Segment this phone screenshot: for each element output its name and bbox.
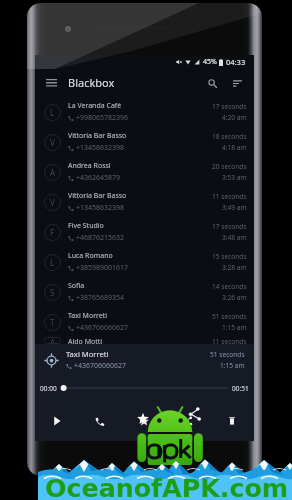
staticText: 11 seconds (212, 192, 247, 201)
button[interactable]: T (35, 307, 254, 337)
staticText: 3:53 am (222, 173, 247, 182)
button[interactable]: A (35, 337, 254, 344)
button[interactable]: Favorite (122, 400, 166, 441)
button[interactable]: Open navigation menu (43, 74, 60, 91)
staticText: 3:26 am (222, 293, 247, 302)
staticText: 00:00 (40, 384, 57, 393)
button[interactable]: L (35, 247, 254, 277)
staticText: F (50, 227, 55, 238)
staticText: 15 seconds (212, 252, 247, 261)
staticText: +436706060627 (74, 361, 127, 371)
button[interactable]: A (35, 157, 254, 187)
button[interactable]: Delete (210, 400, 254, 441)
button[interactable]: Search (204, 75, 220, 91)
staticText: 51 seconds (210, 350, 245, 359)
staticText: A (50, 337, 56, 344)
staticText: La Veranda Café (68, 101, 122, 111)
staticText: 18 seconds (212, 132, 247, 141)
staticText: Taxi Morreti (68, 311, 108, 321)
button[interactable]: S (35, 277, 254, 307)
staticText: +46876215632 (76, 233, 125, 243)
staticText: Blackbox (68, 75, 115, 90)
staticText: Luca Romano (68, 251, 113, 261)
staticText: 45% (203, 57, 217, 67)
staticText: +13458632398 (76, 143, 125, 153)
staticText: 00:51 (232, 384, 249, 393)
staticText: Sofia (68, 281, 85, 291)
staticText: +38765689354 (76, 293, 125, 303)
staticText: 51 seconds (212, 312, 247, 321)
button[interactable]: L (35, 97, 254, 127)
staticText: 3:49 am (222, 203, 247, 212)
staticText: +4362645879 (76, 173, 121, 183)
button[interactable]: Call (78, 400, 122, 441)
button[interactable]: V (35, 127, 254, 157)
staticText: 17 seconds (212, 102, 247, 111)
staticText: A (50, 167, 56, 178)
staticText: Andrea Rossi (68, 161, 111, 171)
staticText: +13458632398 (76, 203, 125, 213)
staticText: S (50, 287, 55, 298)
staticText: +436706060627 (76, 323, 129, 333)
staticText: Taxi Morreti (66, 349, 109, 359)
button[interactable]: Taxi Morreti (35, 344, 254, 376)
button[interactable]: Play (35, 400, 78, 441)
staticText: Aldo Motti (68, 337, 103, 344)
staticText: V (50, 137, 55, 148)
staticText: Five Studio (68, 221, 104, 231)
staticText: 17 seconds (212, 222, 247, 231)
staticText: 04:33 (226, 57, 246, 67)
staticText: Vittoria Bar Basso (68, 191, 127, 201)
staticText: 4:18 am (222, 143, 247, 152)
button[interactable]: V (35, 187, 254, 217)
staticText: L (50, 257, 55, 268)
staticText: +385989001617 (76, 263, 129, 273)
staticText: 1:15 am (222, 323, 247, 332)
button[interactable]: F (35, 217, 254, 247)
staticText: 20 seconds (212, 162, 247, 171)
staticText: 11 seconds (212, 337, 247, 344)
button[interactable]: Share (166, 400, 210, 441)
button[interactable]: Sort (229, 75, 245, 91)
staticText: +998065782396 (76, 113, 129, 123)
staticText: V (50, 197, 55, 208)
staticText: 3:48 am (222, 233, 247, 242)
staticText: L (50, 107, 55, 118)
staticText: Vittoria Bar Basso (68, 131, 127, 141)
staticText: 1:15 am (220, 361, 245, 370)
staticText: 14 seconds (212, 282, 247, 291)
staticText: T (50, 317, 55, 328)
staticText: 4:20 am (222, 113, 247, 122)
staticText: 3:28 am (222, 263, 247, 272)
staticText: OceanofAPK.com (45, 474, 289, 500)
